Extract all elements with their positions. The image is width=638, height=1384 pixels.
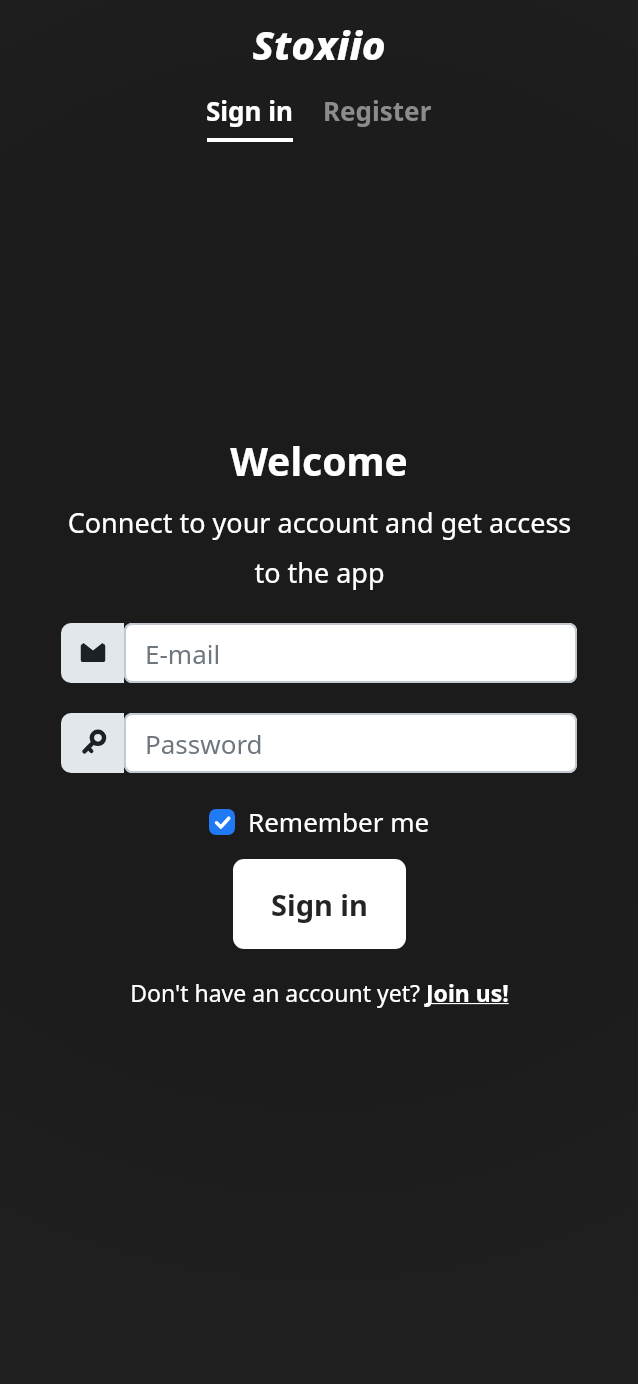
staticText: Stoxiio — [252, 17, 386, 71]
staticText: Password — [145, 726, 263, 761]
button[interactable]: Don't have an account yet? Join us! — [130, 977, 509, 1008]
button[interactable]: Sign in — [233, 859, 406, 949]
button[interactable]: E-mail input — [61, 623, 577, 683]
staticText: Register — [323, 93, 432, 128]
button[interactable]: Sign in — [206, 93, 293, 142]
button[interactable]: Password input — [61, 713, 577, 773]
staticText: Connect to your account and get access t… — [67, 504, 572, 591]
staticText: Don't have an account yet? Join us! — [130, 977, 509, 1008]
staticText: Welcome — [230, 434, 408, 487]
other: Password input — [61, 713, 124, 773]
button[interactable]: Register — [323, 93, 432, 128]
staticText: Sign in — [206, 93, 293, 128]
staticText: E-mail — [145, 636, 221, 671]
button[interactable]: Remember me — [203, 800, 436, 843]
staticText: Sign in — [271, 885, 368, 924]
other: E-mail input — [61, 623, 124, 683]
staticText: Remember me — [248, 804, 430, 839]
